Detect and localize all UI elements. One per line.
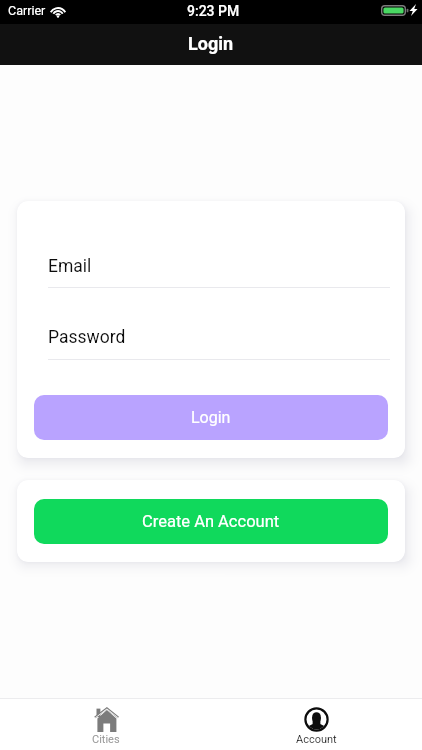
staticText: Create An Account bbox=[142, 512, 280, 531]
button[interactable]: Login bbox=[34, 395, 388, 440]
staticText: Login bbox=[188, 33, 234, 54]
staticText: 9:23 PM bbox=[187, 3, 240, 19]
staticText: Carrier bbox=[8, 3, 46, 18]
staticText: Login bbox=[191, 408, 231, 427]
staticText: Password bbox=[48, 327, 126, 348]
button[interactable]: Create An Account bbox=[34, 499, 388, 544]
staticText: Email bbox=[48, 256, 92, 277]
button[interactable]: Cities bbox=[0, 699, 211, 750]
staticText: Cities bbox=[92, 733, 120, 746]
staticText: Account bbox=[296, 733, 337, 746]
button[interactable]: Account bbox=[211, 699, 422, 750]
